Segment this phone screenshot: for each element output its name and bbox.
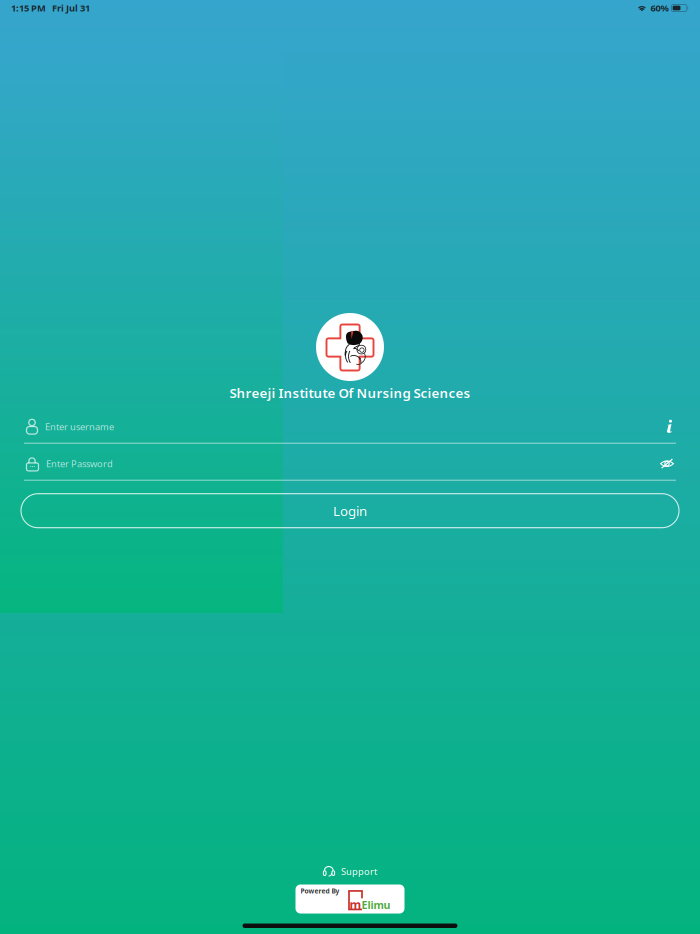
staticText: Login [333,502,367,520]
staticText: Enter Password [46,457,113,470]
staticText: Enter username [45,420,114,433]
button[interactable]: Enter Password [0,454,700,481]
staticText: Elimu [361,898,390,912]
staticText: 60% [650,2,668,14]
staticText: Powered By [300,886,339,895]
staticText: Shreeji Institute Of Nursing Sciences [229,384,470,402]
staticText: Support [341,865,377,878]
button[interactable]: Login [0,494,700,528]
staticText: m [350,897,362,912]
staticText: Fri Jul 31 [52,2,90,14]
staticText: 1:15 PM [11,2,46,14]
button[interactable]: Support [323,864,377,878]
button[interactable]: Enter username [0,417,700,444]
